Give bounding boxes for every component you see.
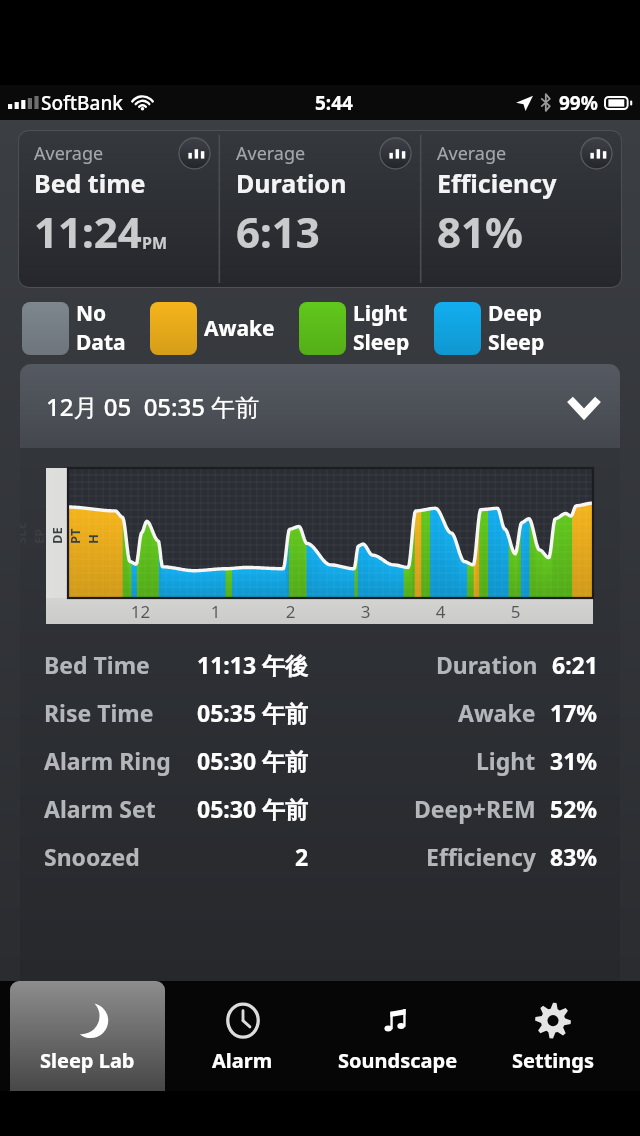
button[interactable]: 12月 05 05:35 午前	[20, 364, 620, 448]
staticText: 11:13 午後	[197, 649, 309, 680]
staticText: Efficiency	[426, 841, 536, 872]
staticText: 17%	[550, 697, 598, 728]
button[interactable]: Bed time statistics	[178, 137, 211, 170]
staticText: 11:24	[34, 203, 142, 260]
button[interactable]: Bed Time	[44, 640, 598, 688]
staticText: Sleep	[353, 328, 410, 357]
other: Collapse entry	[570, 398, 598, 415]
button[interactable]: Soundscape	[320, 981, 475, 1091]
button[interactable]: Light	[299, 299, 410, 357]
button[interactable]: Alarm Set	[44, 784, 598, 832]
staticText: 81%	[437, 203, 523, 260]
staticText: Snoozed	[44, 841, 140, 872]
staticText: 99%	[559, 90, 598, 116]
staticText: 05:30 午前	[197, 793, 309, 824]
staticText: 6:13	[236, 203, 320, 260]
staticText: Sleep Lab	[40, 1047, 135, 1074]
staticText: Light	[353, 299, 408, 328]
staticText: PM	[142, 232, 168, 254]
button[interactable]: Alarm Ring	[44, 736, 598, 784]
button[interactable]: No	[22, 299, 126, 357]
staticText: Average	[236, 141, 306, 166]
staticText: SLEEP DEPTH	[20, 522, 102, 544]
button[interactable]: Alarm	[165, 981, 320, 1091]
staticText: 3	[328, 600, 403, 623]
button[interactable]: Average	[421, 130, 622, 288]
staticText: 83%	[550, 841, 598, 872]
staticText: Deep+REM	[414, 793, 536, 824]
button[interactable]: Snoozed	[44, 832, 598, 880]
button[interactable]: Deep	[434, 299, 545, 357]
staticText: Efficiency	[437, 166, 557, 200]
staticText: Data	[76, 328, 126, 357]
staticText: 52%	[550, 793, 598, 824]
staticText: No	[76, 299, 107, 328]
staticText: Bed Time	[44, 649, 150, 680]
staticText: Rise Time	[44, 697, 154, 728]
staticText: 05:35 午前	[197, 697, 309, 728]
staticText: Average	[34, 141, 104, 166]
staticText: 31%	[550, 745, 598, 776]
staticText: 1	[178, 600, 253, 623]
staticText: Sleep	[488, 328, 545, 357]
button[interactable]: Rise Time	[44, 688, 598, 736]
staticText: 12	[103, 600, 178, 623]
staticText: Light	[476, 745, 536, 776]
staticText: Duration	[436, 649, 538, 680]
staticText: 4	[403, 600, 478, 623]
button[interactable]: Efficiency statistics	[580, 137, 613, 170]
staticText: 12月 05 05:35 午前	[46, 390, 260, 423]
staticText: 5	[478, 600, 553, 623]
staticText: 2	[295, 841, 309, 872]
staticText: Awake	[458, 697, 536, 728]
staticText: 5:44	[315, 90, 353, 116]
staticText: Duration	[236, 166, 347, 200]
button[interactable]: Average	[220, 130, 421, 288]
staticText: SoftBank	[41, 90, 123, 116]
staticText: 6:21	[552, 649, 598, 680]
staticText: Alarm	[212, 1047, 273, 1074]
button[interactable]: Sleep Lab	[10, 981, 165, 1091]
staticText: Settings	[512, 1047, 594, 1074]
staticText: Bed time	[34, 166, 146, 200]
staticText: 05:30 午前	[197, 745, 309, 776]
staticText: Alarm Set	[44, 793, 156, 824]
staticText: 2	[253, 600, 328, 623]
button[interactable]: Duration statistics	[379, 137, 412, 170]
staticText: Deep	[488, 299, 542, 328]
staticText: Average	[437, 141, 507, 166]
staticText: Soundscape	[338, 1047, 458, 1074]
staticText: Alarm Ring	[44, 745, 171, 776]
button[interactable]: Settings	[475, 981, 630, 1091]
staticText: Awake	[204, 314, 275, 343]
button[interactable]: Awake	[150, 302, 275, 355]
button[interactable]: Average	[18, 130, 220, 288]
